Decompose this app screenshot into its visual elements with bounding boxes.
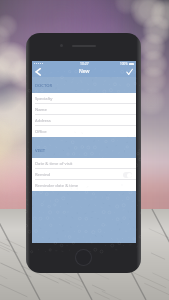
- button[interactable]: Address: [32, 115, 136, 126]
- button[interactable]: Remind: [32, 169, 136, 180]
- staticText: VISIT: [35, 148, 46, 154]
- button[interactable]: Back: [32, 66, 45, 77]
- staticText: Date & time of visit: [35, 161, 73, 167]
- staticText: Remind: [35, 172, 51, 178]
- button[interactable]: Office: [32, 126, 136, 137]
- button[interactable]: Specialty: [32, 93, 136, 104]
- staticText: Reminder date & time: [35, 183, 79, 189]
- button[interactable]: Reminder date & time: [32, 180, 136, 191]
- staticText: DOCTOR: [35, 83, 53, 89]
- staticText: Name: [35, 107, 47, 113]
- staticText: Address: [35, 118, 51, 124]
- staticText: New: [79, 68, 90, 75]
- button[interactable]: Remind toggle: [123, 172, 132, 178]
- staticText: 100%: [120, 62, 128, 66]
- button[interactable]: Name: [32, 104, 136, 115]
- button[interactable]: Date & time of visit: [32, 158, 136, 169]
- staticText: Office: [35, 129, 47, 135]
- button[interactable]: Save: [123, 66, 136, 77]
- staticText: 10:27: [80, 61, 89, 66]
- staticText: Specialty: [35, 96, 53, 102]
